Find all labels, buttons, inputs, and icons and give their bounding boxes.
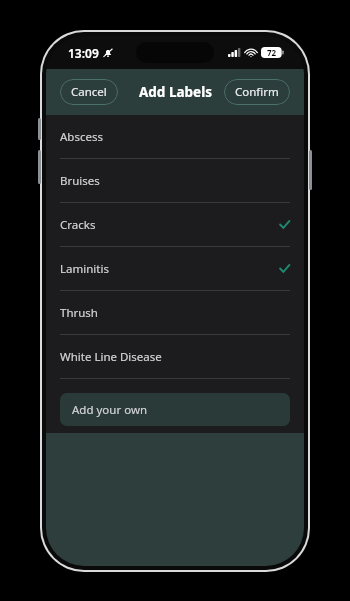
staticText: Laminitis (60, 261, 279, 277)
button[interactable]: Abscess (46, 115, 304, 158)
staticText: Add your own (72, 402, 148, 418)
staticText: White Line Disease (60, 349, 290, 365)
staticText: Abscess (60, 129, 290, 145)
staticText: 72 (267, 47, 277, 58)
button[interactable]: Thrush (46, 291, 304, 334)
button[interactable]: Confirm (224, 79, 290, 105)
button[interactable]: White Line Disease (46, 335, 304, 378)
button[interactable]: Bruises (46, 159, 304, 202)
staticText: Confirm (235, 84, 279, 100)
button[interactable]: Laminitis (46, 247, 304, 290)
staticText: Cracks (60, 217, 279, 233)
staticText: 13:09 (68, 45, 99, 61)
button[interactable]: Add your own (60, 393, 290, 426)
staticText: Cancel (71, 84, 107, 100)
staticText: Thrush (60, 305, 290, 321)
button[interactable]: Cancel (60, 79, 118, 105)
button[interactable]: Cracks (46, 203, 304, 246)
staticText: Add Labels (139, 83, 212, 101)
staticText: Bruises (60, 173, 290, 189)
